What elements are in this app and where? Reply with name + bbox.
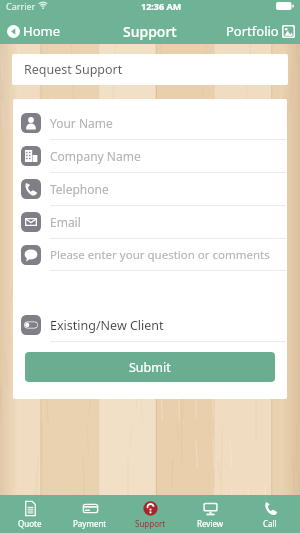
staticText: Home <box>23 22 60 40</box>
button[interactable]: Existing/New Client <box>13 309 287 342</box>
button[interactable]: Call <box>240 495 300 533</box>
staticText: Existing/New Client <box>50 317 164 334</box>
staticText: Carrier <box>6 0 36 12</box>
button[interactable]: Telephone <box>13 173 287 206</box>
button[interactable]: Your Name <box>13 107 287 140</box>
staticText: Email <box>50 214 81 230</box>
button[interactable]: Company Name <box>13 140 287 173</box>
staticText: Company Name <box>50 148 141 164</box>
staticText: Please enter your question or comments <box>50 247 270 263</box>
staticText: Your Name <box>50 115 113 131</box>
button[interactable]: Review <box>180 495 240 533</box>
staticText: Telephone <box>50 181 109 197</box>
staticText: Payment <box>73 518 107 529</box>
button[interactable]: Portfolio <box>218 19 300 43</box>
button[interactable]: Please enter your question or comments <box>13 239 287 271</box>
staticText: Portfolio <box>226 22 279 40</box>
button[interactable]: Payment <box>60 495 120 533</box>
button[interactable]: Support <box>120 495 180 533</box>
staticText: 12:36 AM <box>141 0 182 12</box>
staticText: Quote <box>18 518 42 529</box>
staticText: Submit <box>129 359 171 376</box>
button[interactable]: Email <box>13 206 287 239</box>
button[interactable]: Submit <box>25 352 275 382</box>
staticText: Support <box>135 518 166 529</box>
button[interactable]: Quote <box>0 495 60 533</box>
staticText: Review <box>197 518 224 529</box>
staticText: Call <box>263 518 277 529</box>
button[interactable]: Home <box>0 19 68 43</box>
staticText: Request Support <box>24 61 123 78</box>
button[interactable]: Request Support <box>12 54 288 85</box>
staticText: Support <box>123 22 177 41</box>
